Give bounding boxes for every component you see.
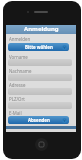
- staticText: Bitte wählen: [25, 44, 53, 50]
- staticText: Anmeldung: [24, 25, 59, 33]
- staticText: E-Mail: [9, 110, 22, 116]
- button[interactable]: [8, 88, 72, 95]
- button[interactable]: Absenden: [8, 116, 69, 124]
- button[interactable]: [8, 74, 72, 81]
- staticText: Absenden: [28, 117, 50, 123]
- staticText: Anmelden: [9, 36, 31, 42]
- button[interactable]: Bitte wählen: [8, 43, 69, 51]
- button[interactable]: [8, 102, 72, 109]
- staticText: Nachname: [9, 68, 32, 74]
- button[interactable]: Home: [35, 138, 48, 151]
- button[interactable]: Anmeldung: [6, 25, 76, 34]
- staticText: Vorname: [9, 54, 28, 60]
- button[interactable]: [8, 59, 72, 66]
- staticText: Adresse: [9, 82, 26, 88]
- staticText: PLZ/Ort: [9, 96, 25, 102]
